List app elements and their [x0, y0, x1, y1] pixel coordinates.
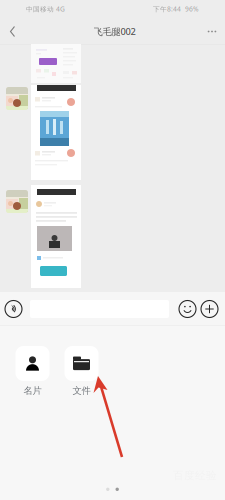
- staticText: 文件: [72, 385, 90, 396]
- button[interactable]: Back: [3, 20, 23, 42]
- button[interactable]: Emoji: [179, 300, 196, 317]
- button[interactable]: 文件: [57, 346, 106, 396]
- button[interactable]: 名片: [8, 346, 57, 396]
- staticText: 下午8:44 96%: [153, 5, 199, 13]
- button[interactable]: Voice message: [5, 300, 22, 317]
- button[interactable]: More: [201, 300, 218, 317]
- button[interactable]: More: [202, 20, 222, 42]
- staticText: 名片: [23, 385, 41, 396]
- staticText: 中国移动 4G: [26, 5, 65, 13]
- staticText: 飞毛腿002: [93, 25, 135, 38]
